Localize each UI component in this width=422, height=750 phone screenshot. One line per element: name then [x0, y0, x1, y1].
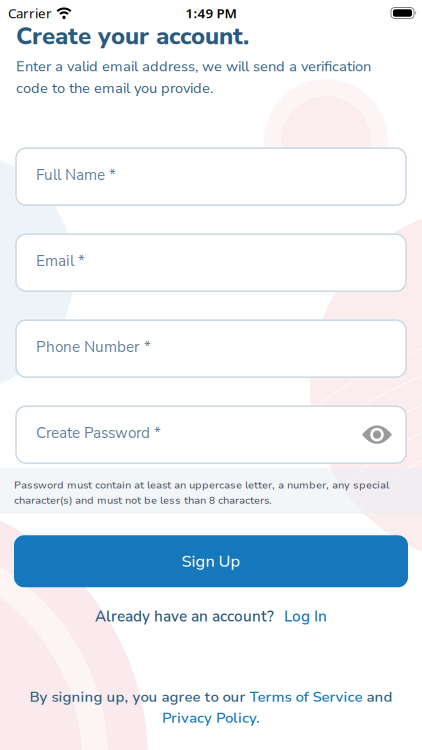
staticText: Full Name * [36, 165, 116, 185]
button[interactable]: Full Name * [16, 148, 406, 205]
button[interactable]: Email * [16, 234, 406, 291]
staticText: Carrier [8, 4, 52, 22]
button[interactable]: Create Password * [16, 406, 406, 463]
staticText: Already have an account? [95, 606, 274, 627]
button[interactable]: Terms of Service [249, 687, 362, 707]
staticText: and [362, 687, 392, 707]
button[interactable]: Sign Up [14, 535, 408, 587]
staticText: By signing up, you agree to our [29, 687, 249, 707]
staticText: Privacy Policy. [162, 708, 260, 728]
staticText: Email * [36, 251, 85, 271]
staticText: Enter a valid email address, we will sen… [16, 57, 371, 98]
button[interactable]: Privacy Policy. [162, 708, 260, 728]
staticText: Create your account. [16, 20, 249, 53]
button[interactable]: Phone Number * [16, 320, 406, 377]
staticText: Phone Number * [36, 337, 151, 357]
button[interactable]: Show password [362, 425, 392, 445]
button[interactable]: Log In [284, 606, 327, 627]
staticText: Terms of Service [249, 687, 362, 707]
staticText: Sign Up [181, 550, 240, 572]
staticText: 1:49 PM [185, 4, 236, 22]
staticText: Password must contain at least an upperc… [14, 478, 389, 507]
staticText: Create Password * [36, 423, 161, 443]
staticText: Log In [284, 606, 327, 627]
